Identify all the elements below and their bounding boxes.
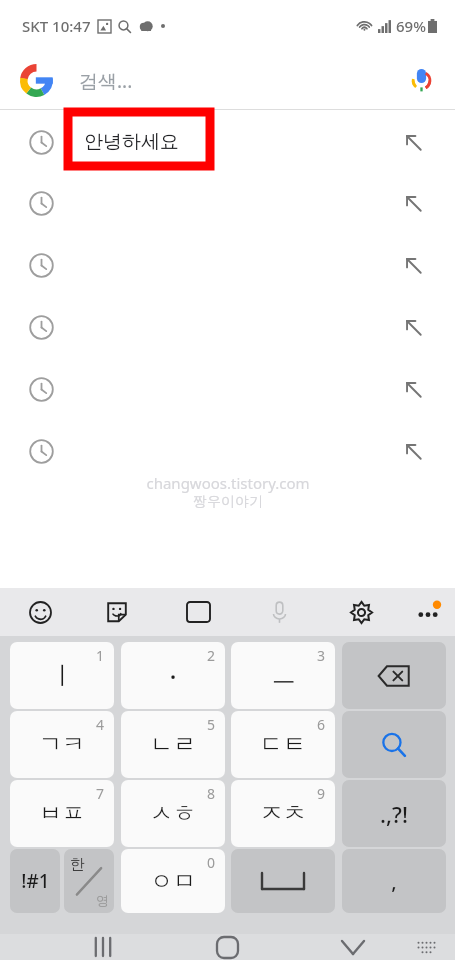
button[interactable]: Home	[203, 934, 251, 960]
staticText: ㄷㅌ	[260, 730, 306, 759]
staticText: changwoos.tistory.com	[146, 473, 310, 493]
staticText: 한	[70, 855, 85, 874]
staticText: 2	[207, 646, 216, 665]
staticText: ㅡ	[271, 660, 296, 691]
button[interactable]: ㅡ	[231, 642, 335, 709]
button[interactable]: ㅈㅊ	[231, 780, 335, 847]
staticText: .,?!	[380, 799, 408, 829]
button[interactable]: ㅂㅍ	[10, 780, 114, 847]
button[interactable]: Voice search	[401, 61, 441, 101]
staticText: 5	[207, 715, 216, 734]
button[interactable]: Stickers	[95, 590, 139, 634]
staticText: 3	[317, 646, 326, 665]
button[interactable]: !#1	[10, 849, 60, 913]
button[interactable]: ㄱㅋ	[10, 711, 114, 778]
staticText: ㄴㄹ	[150, 730, 196, 759]
staticText: SKT 10:47	[22, 16, 91, 36]
button[interactable]	[0, 172, 455, 234]
button[interactable]: Voice input	[257, 590, 301, 634]
staticText: !#1	[21, 868, 50, 894]
staticText: 검색...	[79, 68, 133, 94]
staticText: 9	[317, 784, 326, 803]
staticText: ㄱㅋ	[39, 730, 85, 759]
button[interactable]	[0, 420, 455, 482]
button[interactable]: Backspace	[342, 642, 446, 709]
button[interactable]: Recent apps	[79, 934, 127, 960]
staticText: 69%	[396, 16, 426, 36]
button[interactable]: GIF	[176, 590, 220, 634]
button[interactable]: ㄴㄹ	[121, 711, 225, 778]
button[interactable]: .,?!	[342, 780, 446, 847]
button[interactable]: ㅇㅁ	[121, 849, 225, 913]
staticText: 짱우이야기	[193, 493, 263, 511]
button[interactable]: ·	[121, 642, 225, 709]
button[interactable]: Keyboard settings	[339, 590, 383, 634]
staticText: ㅇㅁ	[150, 867, 196, 896]
staticText: 4	[96, 715, 105, 734]
button[interactable]: Emoji	[18, 590, 62, 634]
staticText: ㅣ	[50, 660, 75, 691]
staticText: ㅈㅊ	[260, 799, 306, 828]
button[interactable]: Korean English toggle	[64, 849, 114, 913]
button[interactable]: ㅣ	[10, 642, 114, 709]
button[interactable]: 안녕하세요	[0, 111, 455, 173]
button[interactable]	[0, 296, 455, 358]
button[interactable]: Search	[342, 711, 446, 778]
staticText: 안녕하세요	[84, 130, 179, 154]
button[interactable]	[0, 234, 455, 296]
button[interactable]: Hide keyboard	[329, 934, 377, 960]
staticText: 7	[96, 784, 105, 803]
staticText: ㅂㅍ	[39, 799, 85, 828]
staticText: ·	[169, 658, 177, 693]
button[interactable]: ㅅㅎ	[121, 780, 225, 847]
staticText: 8	[207, 784, 216, 803]
button[interactable]: 검색...	[0, 52, 455, 109]
button[interactable]: More options	[406, 590, 450, 634]
staticText: 영	[96, 892, 109, 908]
button[interactable]: Change keyboard	[404, 934, 448, 960]
button[interactable]: ㄷㅌ	[231, 711, 335, 778]
button[interactable]	[0, 358, 455, 420]
button[interactable]: ,	[342, 849, 446, 913]
button[interactable]: Space	[231, 849, 335, 913]
staticText: 1	[96, 646, 105, 665]
staticText: 6	[317, 715, 326, 734]
staticText: ㅅㅎ	[150, 799, 196, 828]
staticText: 0	[207, 853, 216, 872]
staticText: ,	[391, 868, 397, 895]
